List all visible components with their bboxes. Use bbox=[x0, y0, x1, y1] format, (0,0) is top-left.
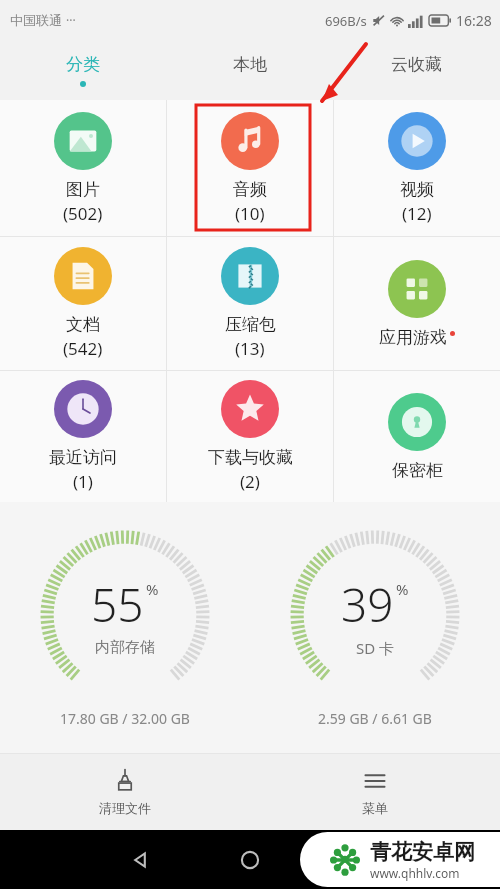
staticText: 55 bbox=[91, 573, 144, 636]
staticText: 清理文件 bbox=[99, 800, 151, 816]
staticText: % bbox=[396, 579, 409, 599]
staticText: 分类 bbox=[66, 54, 100, 75]
staticText: % bbox=[146, 579, 159, 599]
staticText: (13) bbox=[235, 337, 265, 360]
button[interactable]: 下载与收藏 bbox=[167, 371, 333, 502]
button[interactable]: 39 bbox=[250, 502, 500, 753]
staticText: 图片 bbox=[66, 179, 100, 200]
staticText: SD 卡 bbox=[356, 638, 395, 658]
staticText: 最近访问 bbox=[49, 447, 117, 468]
staticText: 内部存储 bbox=[95, 638, 155, 657]
staticText: 云收藏 bbox=[391, 54, 442, 75]
staticText: ··· bbox=[66, 12, 76, 28]
button[interactable]: 应用游戏 bbox=[334, 237, 500, 370]
staticText: (12) bbox=[402, 202, 432, 225]
staticText: 下载与收藏 bbox=[208, 447, 293, 468]
staticText: 应用游戏 bbox=[379, 327, 447, 348]
staticText: 2.59 GB / 6.61 GB bbox=[318, 709, 432, 728]
button[interactable]: 本地 bbox=[166, 40, 333, 100]
button[interactable]: 分类 bbox=[0, 40, 166, 100]
staticText: 音频 bbox=[233, 179, 267, 200]
staticText: (542) bbox=[63, 337, 103, 360]
staticText: www.qhhlv.com bbox=[370, 865, 460, 881]
button[interactable]: 图片 bbox=[0, 100, 166, 236]
staticText: 39 bbox=[341, 573, 394, 636]
button[interactable]: 云收藏 bbox=[333, 40, 500, 100]
staticText: 压缩包 bbox=[225, 314, 276, 335]
staticText: 本地 bbox=[233, 54, 267, 75]
button[interactable]: 视频 bbox=[334, 100, 500, 236]
staticText: 青花安卓网 bbox=[370, 839, 475, 865]
button[interactable]: 菜单 bbox=[250, 754, 500, 830]
staticText: (502) bbox=[63, 202, 103, 225]
staticText: 保密柜 bbox=[392, 460, 443, 481]
button[interactable]: 压缩包 bbox=[167, 237, 333, 370]
staticText: 16:28 bbox=[456, 11, 492, 30]
staticText: 中国联通 bbox=[10, 12, 62, 28]
button[interactable]: 保密柜 bbox=[334, 371, 500, 502]
button[interactable]: 音频 bbox=[167, 100, 333, 236]
staticText: 视频 bbox=[400, 179, 434, 200]
button[interactable]: 55 bbox=[0, 502, 250, 753]
staticText: 菜单 bbox=[362, 800, 388, 816]
staticText: (10) bbox=[235, 202, 265, 225]
button[interactable]: Back bbox=[125, 845, 155, 875]
staticText: 文档 bbox=[66, 314, 100, 335]
button[interactable]: Home bbox=[235, 845, 265, 875]
staticText: (2) bbox=[240, 470, 260, 493]
staticText: 696B/s bbox=[325, 12, 367, 30]
button[interactable]: 文档 bbox=[0, 237, 166, 370]
staticText: (1) bbox=[73, 470, 93, 493]
button[interactable]: 最近访问 bbox=[0, 371, 166, 502]
staticText: 17.80 GB / 32.00 GB bbox=[60, 709, 190, 728]
button[interactable]: 清理文件 bbox=[0, 754, 250, 830]
